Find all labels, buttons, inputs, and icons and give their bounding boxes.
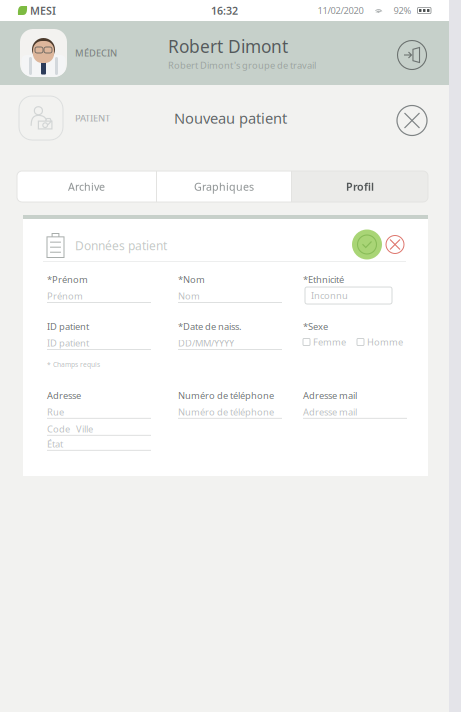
- staticText: PATIENT: [75, 112, 110, 124]
- staticText: Robert Dimont's groupe de travail: [168, 59, 316, 71]
- staticText: Numéro de téléphone: [178, 406, 274, 418]
- button[interactable]: Homme: [357, 336, 403, 348]
- staticText: Graphiques: [194, 179, 254, 194]
- staticText: Robert Dimont: [168, 35, 288, 58]
- staticText: Nom: [178, 290, 200, 302]
- staticText: Nouveau patient: [174, 108, 287, 128]
- button[interactable]: Valider: [352, 229, 382, 259]
- staticText: Homme: [367, 336, 403, 348]
- staticText: Profil: [346, 179, 374, 194]
- staticText: MESI: [30, 3, 56, 18]
- staticText: *Nom: [178, 273, 205, 286]
- staticText: Femme: [313, 336, 346, 348]
- button[interactable]: Archive: [17, 171, 156, 202]
- button[interactable]: Profil: [292, 171, 428, 202]
- button[interactable]: Femme: [303, 336, 346, 348]
- staticText: *Prénom: [47, 273, 88, 286]
- staticText: MÉDECIN: [75, 47, 117, 59]
- staticText: Prénom: [47, 290, 83, 302]
- staticText: Données patient: [75, 237, 167, 253]
- staticText: ID patient: [47, 337, 89, 349]
- staticText: Code: [47, 423, 70, 435]
- staticText: * Champs requis: [47, 360, 100, 369]
- staticText: 11/02/2020: [317, 4, 363, 17]
- button[interactable]: Annuler: [382, 231, 408, 257]
- staticText: Adresse mail: [303, 406, 357, 418]
- staticText: Archive: [68, 179, 105, 194]
- button[interactable]: Se déconnecter: [393, 32, 431, 74]
- staticText: Numéro de téléphone: [178, 389, 274, 402]
- button[interactable]: Graphiques: [157, 171, 291, 202]
- staticText: DD/MM/YYYY: [178, 337, 234, 349]
- staticText: Rue: [47, 406, 64, 418]
- staticText: État: [47, 438, 63, 450]
- staticText: Adresse: [47, 389, 81, 402]
- button[interactable]: Fermer: [393, 96, 431, 139]
- staticText: 16:32: [211, 3, 238, 18]
- staticText: *Sexe: [303, 320, 328, 333]
- staticText: Adresse mail: [303, 389, 357, 402]
- staticText: *Date de naiss.: [178, 320, 242, 333]
- staticText: Ville: [76, 423, 93, 435]
- staticText: 92%: [393, 4, 411, 17]
- staticText: ID patient: [47, 320, 89, 333]
- staticText: *Ethnicité: [303, 273, 344, 286]
- staticText: Inconnu: [311, 289, 348, 302]
